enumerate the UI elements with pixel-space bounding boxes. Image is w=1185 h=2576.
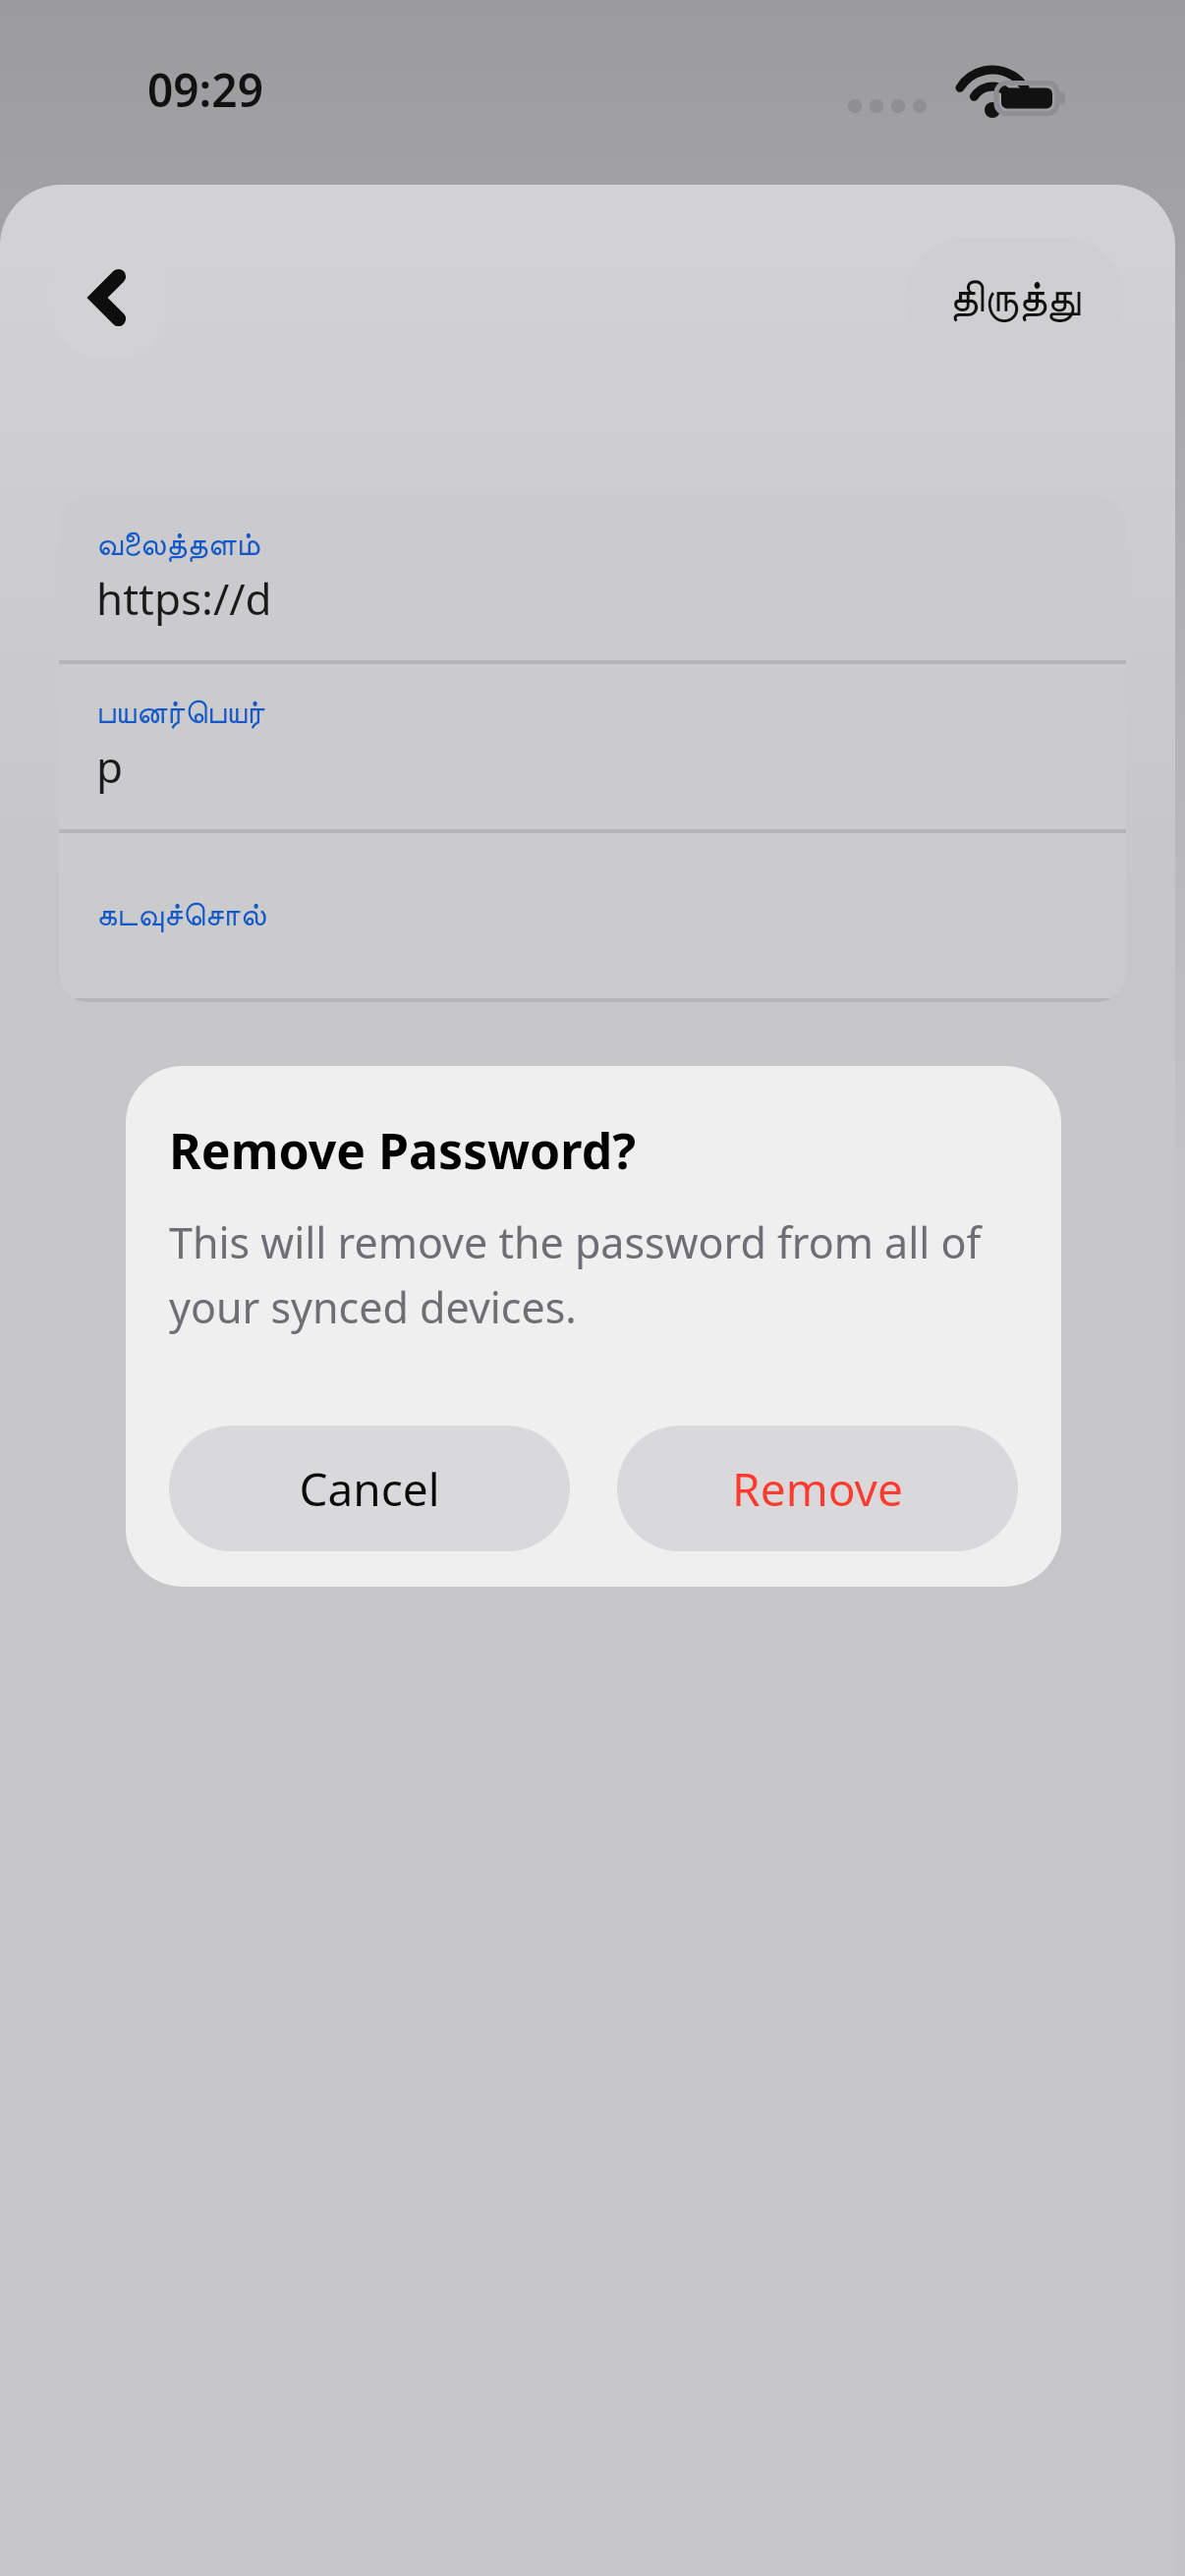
button[interactable]: திருத்து <box>905 238 1125 358</box>
button[interactable]: Remove <box>617 1426 1018 1551</box>
staticText: p <box>96 737 124 796</box>
button[interactable]: வலைத்தளம் <box>59 496 1126 660</box>
staticText: பயனர்பெயர் <box>96 698 265 730</box>
button[interactable]: பயனர்பெயர் <box>59 664 1126 829</box>
button[interactable]: Back <box>47 236 171 360</box>
staticText: Remove Password? <box>169 1117 637 1184</box>
staticText: 09:29 <box>147 59 263 121</box>
staticText: Remove <box>732 1458 903 1520</box>
button[interactable]: கடவுச்சொல் <box>59 833 1126 998</box>
staticText: கடவுச்சொல் <box>96 900 266 932</box>
staticText: திருத்து <box>949 276 1081 320</box>
staticText: This will remove the password from all o… <box>169 1213 1018 1335</box>
staticText: வலைத்தளம் <box>96 530 260 562</box>
staticText: https://d <box>96 569 272 628</box>
button[interactable]: Cancel <box>169 1426 570 1551</box>
staticText: Cancel <box>299 1458 440 1520</box>
